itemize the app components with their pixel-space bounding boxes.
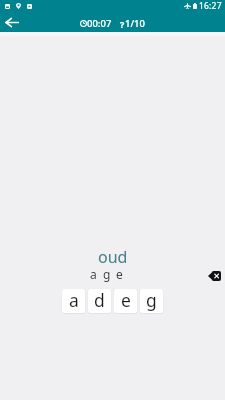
button[interactable]: Back — [2, 13, 21, 32]
staticText: a — [69, 289, 79, 312]
button[interactable]: d — [88, 289, 111, 313]
staticText: ? — [120, 18, 125, 30]
staticText: e — [121, 289, 131, 312]
staticText: 1/10 — [125, 17, 145, 30]
staticText: e — [116, 266, 123, 282]
staticText: 16:27 — [199, 0, 222, 12]
button[interactable]: g — [140, 289, 163, 313]
staticText: oud — [98, 246, 128, 268]
button[interactable]: Backspace — [204, 264, 225, 288]
staticText: g — [146, 289, 157, 312]
staticText: g — [103, 266, 111, 282]
staticText: a — [90, 266, 97, 282]
button[interactable]: e — [114, 289, 137, 313]
staticText: 00:07 — [87, 17, 112, 30]
button[interactable]: a — [62, 289, 85, 313]
staticText: d — [94, 289, 105, 312]
